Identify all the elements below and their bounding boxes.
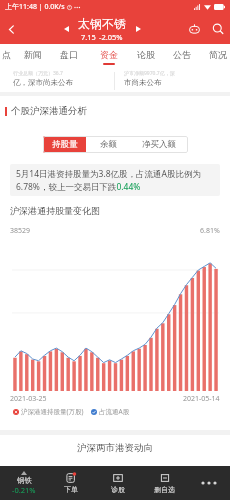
staticText: -0.21% <box>12 485 36 495</box>
staticText: 沪深两市港资动向 <box>77 442 153 454</box>
button[interactable]: More options <box>188 466 230 500</box>
button[interactable]: 余额 <box>86 136 130 153</box>
button[interactable]: 论股 <box>133 44 159 70</box>
staticText: 2021-03-25 <box>10 394 47 404</box>
staticText: 持股量 <box>52 139 78 150</box>
staticText: 点 <box>2 49 11 60</box>
button[interactable]: Previous stock <box>58 21 74 37</box>
staticText: 亿，深市尚未公布 <box>13 78 73 87</box>
staticText: 沪市净额9970.7亿，深 <box>124 70 175 77</box>
staticText: 占流通A股 <box>99 407 130 416</box>
staticText: 7.15 <box>81 32 96 42</box>
staticText: 5月14日港资持股量为3.8亿股，占流通A股比例为6.78%，较上一交易日下跌0… <box>16 168 214 192</box>
button[interactable]: 诊股 <box>94 466 141 500</box>
button[interactable]: 新闻 <box>20 44 46 70</box>
staticText: 太钢不锈 <box>78 16 126 31</box>
button[interactable]: 点 <box>0 44 19 70</box>
staticText: 38529 <box>10 226 31 236</box>
staticText: 简况 <box>209 49 227 60</box>
button[interactable]: AI assistant <box>182 14 206 44</box>
button[interactable]: 钢铁 <box>0 466 47 500</box>
staticText: 余额 <box>100 139 117 150</box>
staticText: 沪深港通持股量变化图 <box>10 205 100 216</box>
staticText: 资金 <box>100 49 118 60</box>
staticText: 2021-05-14 <box>183 394 220 404</box>
staticText: 市尚未公布 <box>124 78 162 87</box>
staticText: -2.05% <box>99 32 123 42</box>
button[interactable]: 净买入额 <box>130 136 188 153</box>
staticText: 6.81% <box>200 226 220 236</box>
staticText: 个股沪深港通分析 <box>11 105 87 117</box>
staticText: 论股 <box>137 49 155 60</box>
staticText: 诊股 <box>111 485 125 494</box>
button[interactable]: 下单 <box>47 466 94 500</box>
staticText: 钢铁 <box>17 476 32 485</box>
staticText: 盘口 <box>60 49 78 60</box>
button[interactable]: Next stock <box>130 21 146 37</box>
button[interactable]: 简况 <box>205 44 230 70</box>
staticText: 上午11:48 | 0.0K/s <box>5 2 65 12</box>
button[interactable]: 持股量 <box>43 136 86 153</box>
staticText: 沪深港通持股量(万股) <box>21 407 84 416</box>
staticText: 行业总额（万元）36.7 <box>13 70 63 77</box>
staticText: 下单 <box>64 485 78 494</box>
button[interactable]: 沪深两市港资动向 <box>11 435 219 461</box>
button[interactable]: Back <box>0 14 22 44</box>
button[interactable]: 删自选 <box>141 466 188 500</box>
staticText: 新闻 <box>24 49 42 60</box>
button[interactable]: 资金 <box>96 44 122 70</box>
button[interactable]: Search <box>206 14 230 44</box>
staticText: 公告 <box>173 49 191 60</box>
button[interactable]: 盘口 <box>56 44 82 70</box>
button[interactable]: 公告 <box>169 44 195 70</box>
staticText: 删自选 <box>154 485 175 494</box>
staticText: 净买入额 <box>142 139 176 150</box>
